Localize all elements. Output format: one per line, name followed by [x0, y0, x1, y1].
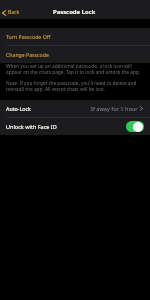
staticText: Unlock with Face ID [6, 123, 57, 130]
staticText: Turn Passcode Off [6, 33, 51, 40]
staticText: Back [8, 9, 20, 16]
button[interactable]: Turn Passcode Off [0, 28, 150, 45]
staticText: When you set up an additional passcode, … [6, 63, 145, 75]
button[interactable]: Unlock with Face ID toggle [126, 121, 144, 132]
button[interactable]: Change Passcode [0, 46, 150, 63]
staticText: Change Passcode [6, 51, 49, 58]
button[interactable]: Unlock with Face ID [0, 118, 150, 135]
staticText: If away for 1 hour [91, 105, 138, 113]
button[interactable]: Auto-Lock [0, 100, 150, 117]
staticText: Passcode Lock [53, 8, 96, 16]
staticText: Note: If you forget the passcode, you'll… [6, 80, 145, 92]
button[interactable]: Back [0, 7, 23, 19]
staticText: Auto-Lock [6, 105, 31, 112]
